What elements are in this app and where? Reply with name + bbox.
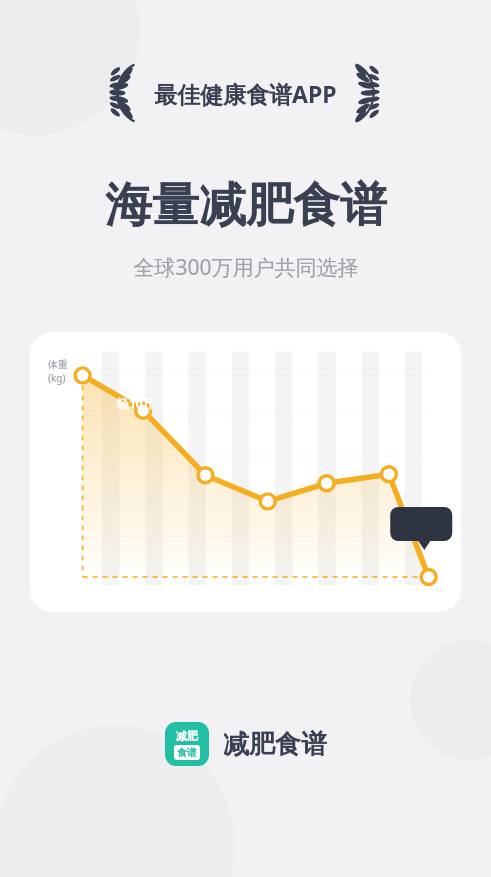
other: 减肥食谱 app icon bbox=[165, 722, 209, 766]
staticText: 减肥 bbox=[176, 729, 198, 743]
staticText: 食谱 bbox=[177, 746, 197, 759]
staticText: 轻10斤 bbox=[117, 395, 155, 411]
staticText: 全球300万用户共同选择 bbox=[133, 253, 359, 282]
staticText: 体重 bbox=[48, 358, 68, 371]
button[interactable]: 减肥食谱 app icon bbox=[165, 722, 327, 766]
staticText: 最佳健康食谱APP bbox=[154, 78, 337, 109]
staticText: 海量减肥食谱 bbox=[105, 176, 387, 235]
staticText: 减肥食谱 bbox=[223, 728, 327, 761]
button[interactable]: 体重 bbox=[30, 332, 461, 612]
staticText: (kg) bbox=[48, 371, 66, 385]
